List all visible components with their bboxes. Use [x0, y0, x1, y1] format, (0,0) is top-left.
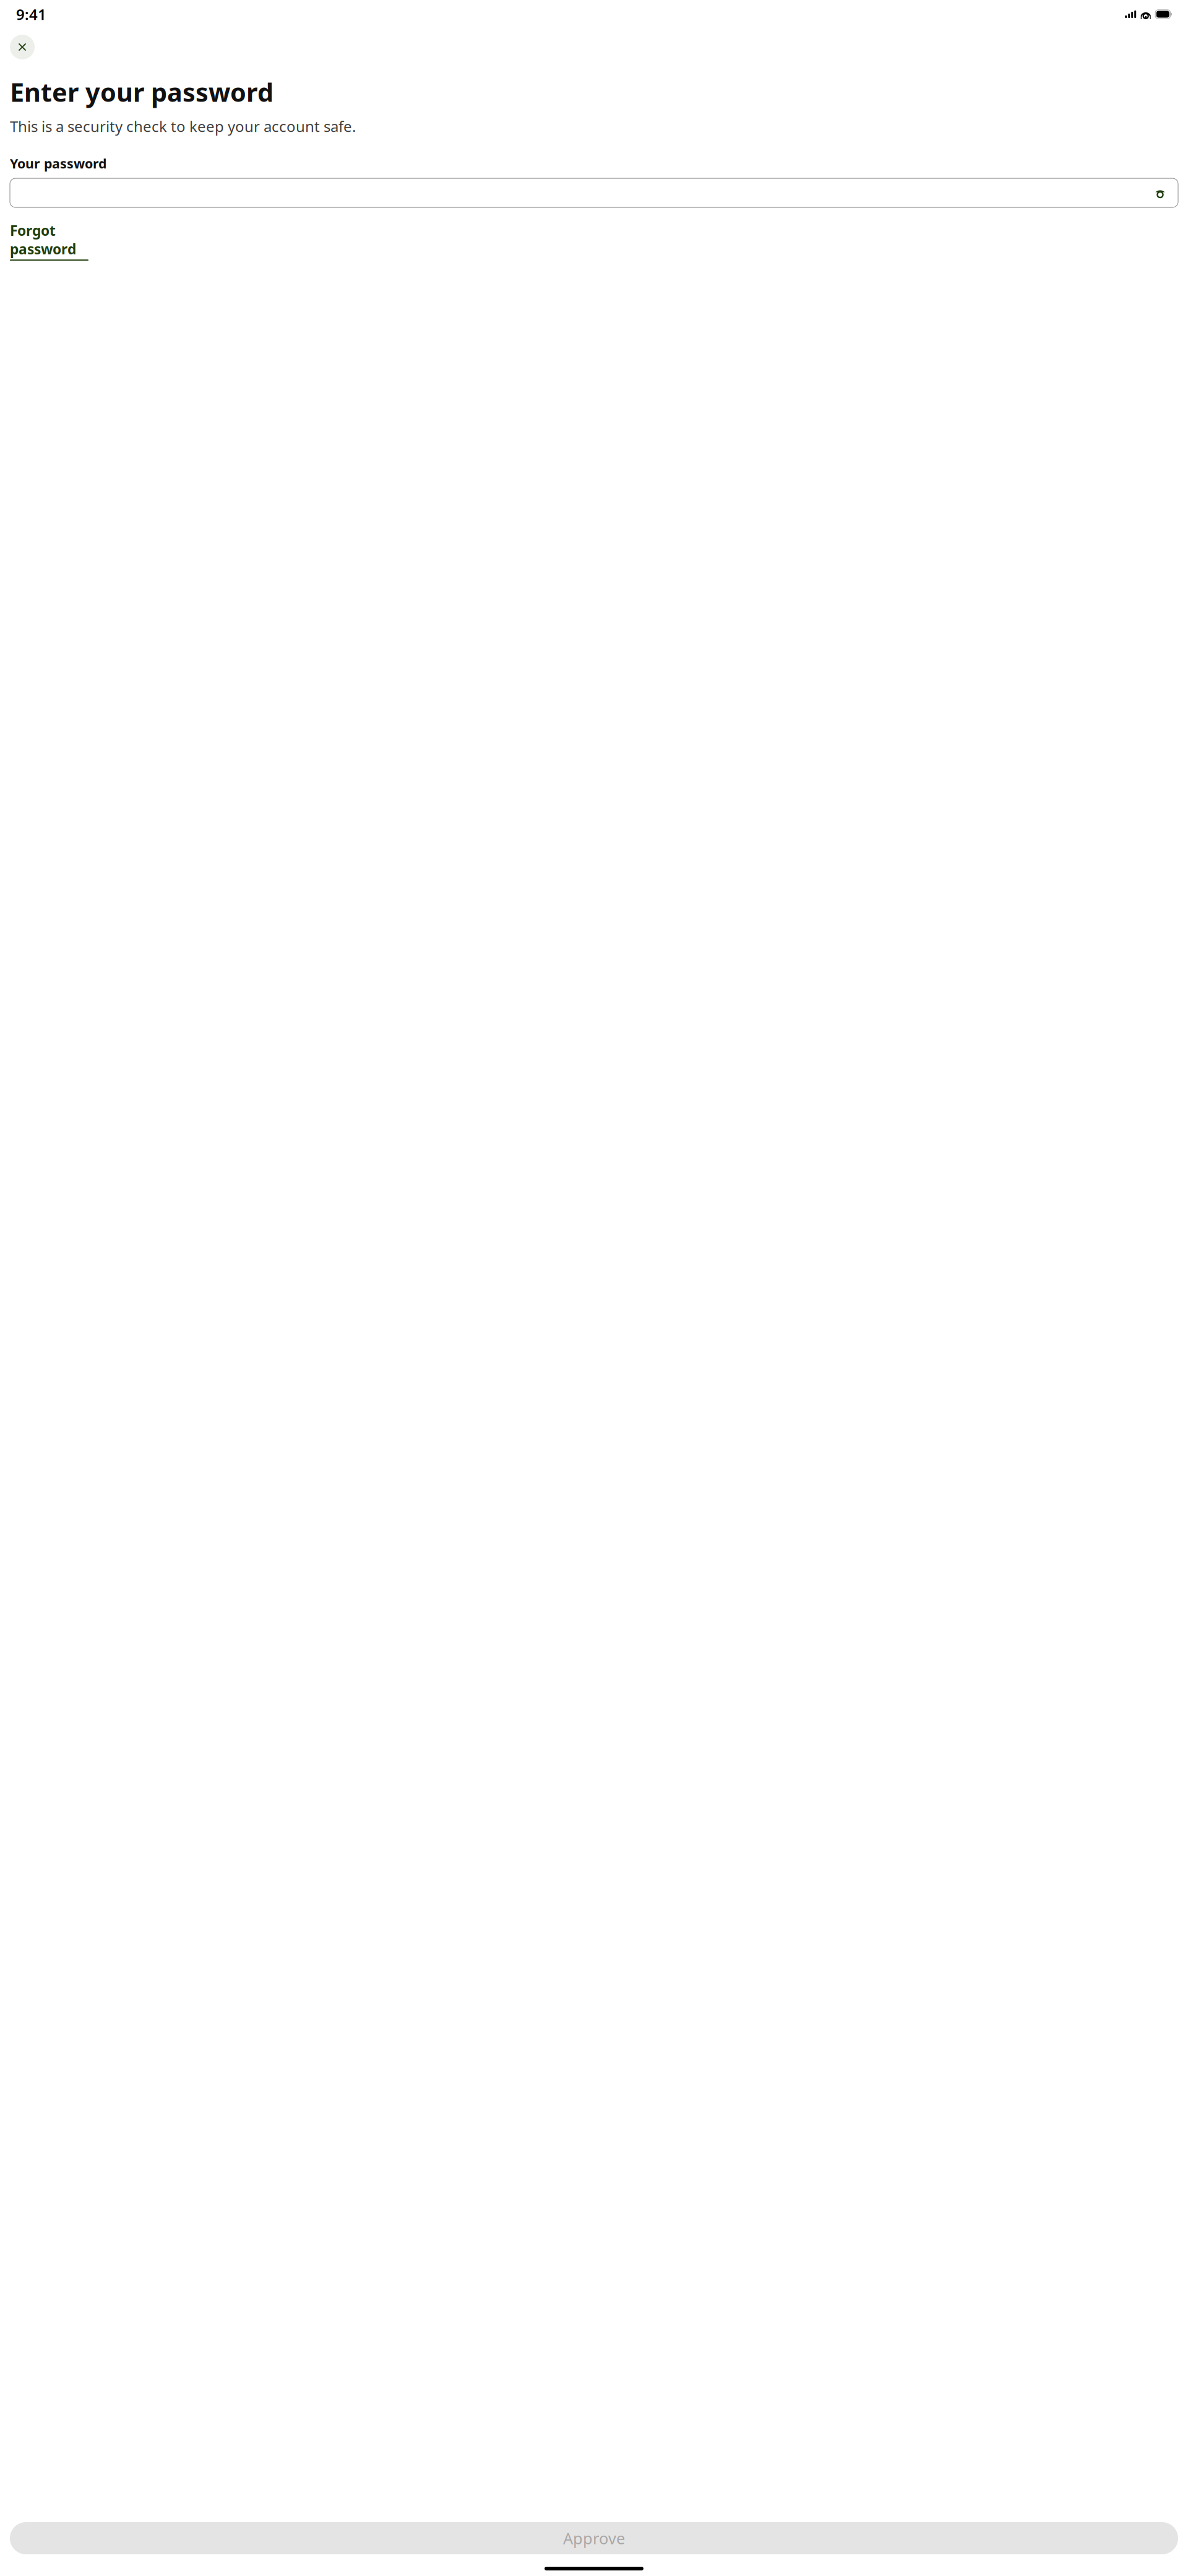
staticText: Your password	[10, 155, 106, 172]
button[interactable]: Show password	[1151, 184, 1169, 202]
staticText: This is a security check to keep your ac…	[10, 116, 356, 136]
button[interactable]: Forgot password	[10, 221, 88, 261]
button[interactable]: Close	[10, 35, 35, 59]
staticText: 9:41	[16, 4, 46, 24]
button[interactable]: Approve	[10, 2522, 1178, 2554]
staticText: Forgot password	[10, 221, 76, 258]
staticText: Approve	[563, 2528, 625, 2549]
staticText: Enter your password	[10, 75, 273, 109]
